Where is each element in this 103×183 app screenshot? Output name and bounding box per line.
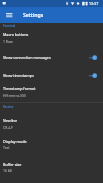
staticText: CR+LF bbox=[3, 125, 13, 130]
staticText: Show connection messages bbox=[3, 55, 51, 60]
staticText: Buffer size bbox=[3, 162, 22, 167]
button[interactable]: Show timestamps bbox=[0, 66, 103, 84]
staticText: Macro buttons bbox=[3, 32, 29, 37]
staticText: Text bbox=[3, 145, 10, 150]
button[interactable]: Display mode bbox=[0, 137, 103, 160]
button[interactable]: Buffer size bbox=[0, 160, 103, 183]
button[interactable]: Timestamp format bbox=[0, 84, 103, 102]
staticText: 16 kB bbox=[3, 168, 12, 173]
button[interactable]: Newline bbox=[0, 116, 103, 137]
button[interactable]: Show connection messages bbox=[0, 48, 103, 66]
button[interactable]: Open navigation drawer bbox=[0, 7, 18, 23]
button[interactable]: Macro buttons bbox=[0, 30, 103, 48]
staticText: Timestamp format bbox=[3, 86, 36, 91]
staticText: 1 Row bbox=[3, 39, 13, 44]
staticText: Display mode bbox=[3, 139, 27, 144]
staticText: Terminal bbox=[3, 24, 16, 28]
staticText: Receive bbox=[3, 105, 14, 109]
staticText: Newline bbox=[3, 118, 17, 123]
staticText: Settings bbox=[23, 11, 44, 18]
staticText: HH:mm:ss.SSS bbox=[3, 93, 26, 98]
staticText: Show timestamps bbox=[3, 73, 34, 78]
staticText: 13:37 bbox=[89, 1, 99, 6]
